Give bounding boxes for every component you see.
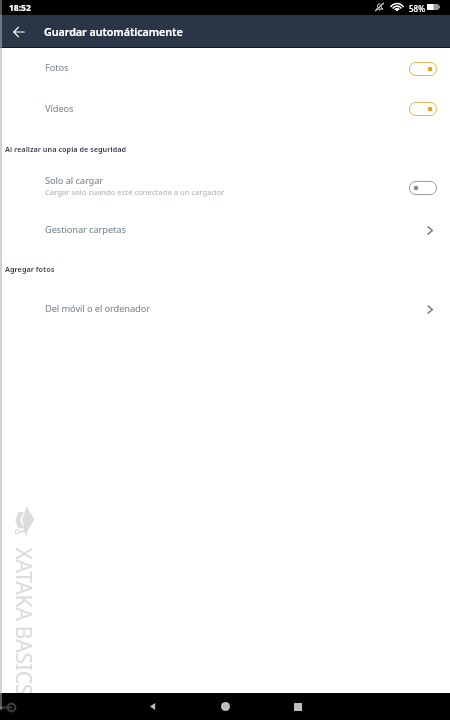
staticText: Al realizar una copia de seguridad [5, 144, 127, 154]
button[interactable]: Desactivado [409, 181, 437, 195]
button[interactable]: Solo al cargar [0, 162, 450, 208]
button[interactable]: Recientes [284, 693, 311, 720]
button[interactable]: Activado [409, 102, 437, 116]
button[interactable]: Del móvil o el ordenador [0, 289, 450, 329]
staticText: Cargar solo cuando esté conectada a un c… [45, 187, 225, 197]
staticText: Solo al cargar [45, 174, 103, 187]
staticText: Del móvil o el ordenador [45, 302, 150, 315]
staticText: Gestionar carpetas [45, 223, 126, 236]
staticText: Guardar automáticamente [44, 24, 183, 39]
staticText: 58% [409, 3, 425, 14]
staticText: 18:52 [9, 2, 31, 14]
button[interactable]: Atrás [139, 693, 166, 720]
button[interactable]: Vídeos [0, 90, 450, 130]
button[interactable]: Inicio [212, 693, 239, 720]
staticText: Vídeos [45, 102, 74, 115]
staticText: Fotos [45, 61, 69, 74]
button[interactable]: Ocultar teclado [0, 702, 17, 713]
button[interactable]: Atrás [2, 15, 35, 48]
staticText: XATAKA BASICS [8, 547, 37, 695]
staticText: Agregar fotos [5, 264, 55, 274]
button[interactable]: Abrir [420, 299, 440, 319]
button[interactable]: Fotos [0, 49, 450, 89]
button[interactable]: Abrir [420, 220, 440, 240]
button[interactable]: Gestionar carpetas [0, 210, 450, 250]
button[interactable]: Activado [409, 62, 437, 76]
